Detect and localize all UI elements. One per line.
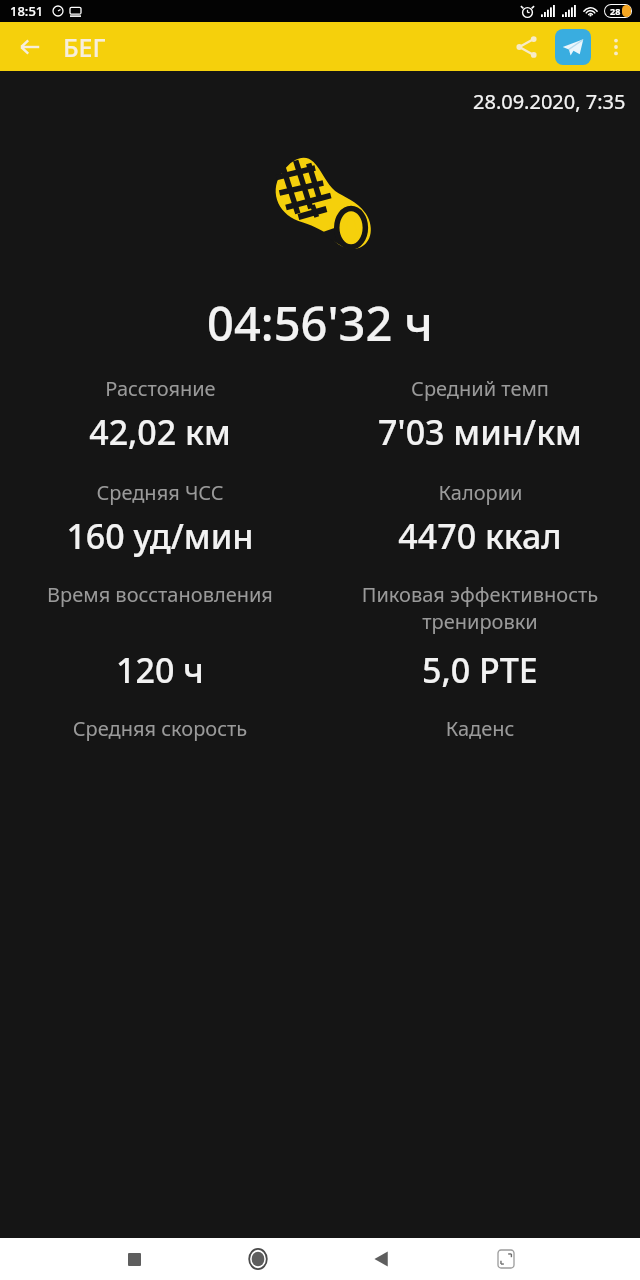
staticText: 160 уд/мин (66, 513, 254, 559)
staticText: 28 (610, 5, 621, 17)
staticText: Средняя скорость (0, 715, 320, 742)
staticText: Расстояние (105, 375, 216, 402)
staticText: Средний темп (411, 375, 549, 402)
button[interactable]: Home (238, 1239, 278, 1279)
staticText: Каденс (320, 715, 640, 742)
staticText: 120 ч (116, 647, 204, 693)
button[interactable]: Recents (114, 1239, 154, 1279)
staticText: Пиковая эффективность тренировки (326, 581, 634, 635)
button[interactable]: Share (504, 24, 550, 70)
button[interactable]: More options (596, 27, 636, 67)
staticText: 28.09.2020, 7:35 (473, 88, 626, 115)
staticText: 7'03 мин/км (378, 409, 582, 455)
button[interactable]: Telegram (550, 24, 596, 70)
staticText: 4470 ккал (398, 513, 562, 559)
button[interactable]: Back (362, 1239, 402, 1279)
staticText: Калории (438, 479, 523, 506)
staticText: 42,02 км (89, 409, 231, 455)
button[interactable]: Full screen (486, 1239, 526, 1279)
staticText: БЕГ (63, 30, 106, 64)
staticText: 04:56'32 ч (0, 291, 640, 355)
button[interactable]: Back (8, 25, 52, 69)
staticText: 18:51 (10, 2, 44, 20)
staticText: 5,0 PTE (422, 647, 538, 693)
staticText: Средняя ЧСС (96, 479, 224, 506)
staticText: Время восстановления (47, 581, 273, 608)
